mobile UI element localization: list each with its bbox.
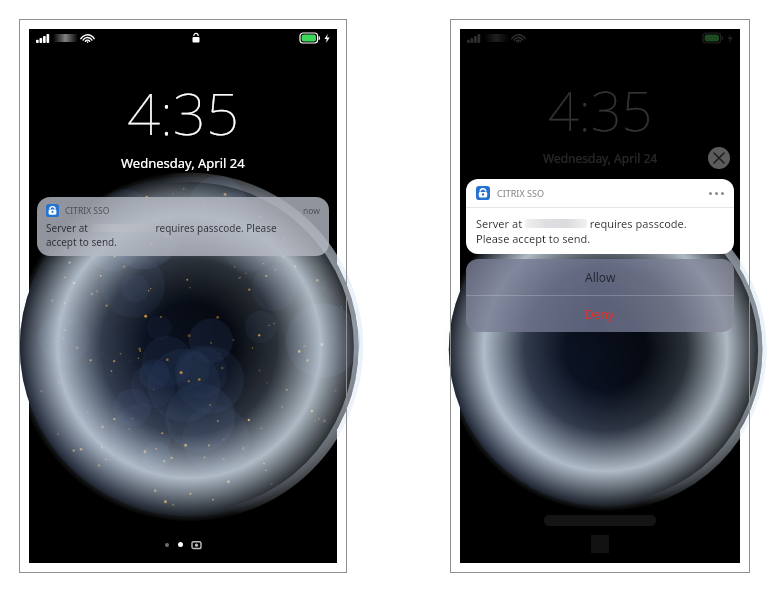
button[interactable]: More options bbox=[709, 192, 724, 195]
staticText: Deny bbox=[585, 306, 615, 322]
staticText: Please accept to send. bbox=[476, 231, 591, 246]
staticText: 4:35 bbox=[127, 73, 239, 152]
button[interactable]: Allow bbox=[466, 259, 734, 295]
button[interactable]: CITRIX SSO bbox=[466, 179, 734, 254]
staticText: Allow bbox=[585, 269, 616, 285]
staticText: requires passcode. Please bbox=[153, 221, 277, 235]
staticText: now bbox=[303, 205, 320, 217]
button[interactable]: CITRIX SSO bbox=[37, 197, 329, 256]
staticText: Server at bbox=[46, 221, 91, 235]
staticText: accept to send. bbox=[46, 235, 117, 249]
staticText: CITRIX SSO bbox=[497, 187, 544, 199]
staticText: Wednesday, April 24 bbox=[543, 150, 658, 166]
button[interactable]: Deny bbox=[466, 296, 734, 332]
staticText: requires passcode. bbox=[587, 216, 687, 231]
staticText: 4:35 bbox=[548, 73, 653, 147]
button[interactable]: Camera bbox=[192, 540, 201, 549]
staticText: Server at bbox=[476, 216, 525, 231]
staticText: Wednesday, April 24 bbox=[121, 154, 245, 172]
staticText: CITRIX SSO bbox=[65, 205, 110, 217]
button[interactable]: Close bbox=[708, 147, 730, 169]
